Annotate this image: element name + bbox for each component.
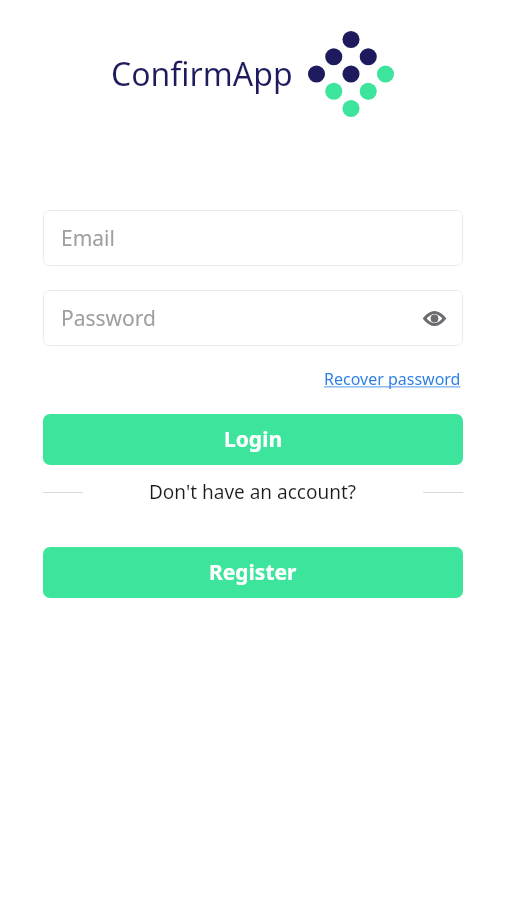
button[interactable]: Password xyxy=(43,290,463,346)
button[interactable]: Register xyxy=(43,547,463,598)
staticText: Email xyxy=(61,224,115,253)
button[interactable]: Email xyxy=(43,210,463,266)
staticText: Don't have an account? xyxy=(149,479,357,505)
button[interactable]: Recover password xyxy=(322,366,463,392)
staticText: Recover password xyxy=(324,368,461,390)
staticText: Register xyxy=(209,558,297,587)
staticText: Login xyxy=(224,425,283,454)
button[interactable]: Show password xyxy=(419,303,449,333)
staticText: Password xyxy=(61,304,156,333)
button[interactable]: Login xyxy=(43,414,463,465)
staticText: ConfirmApp xyxy=(111,52,293,96)
